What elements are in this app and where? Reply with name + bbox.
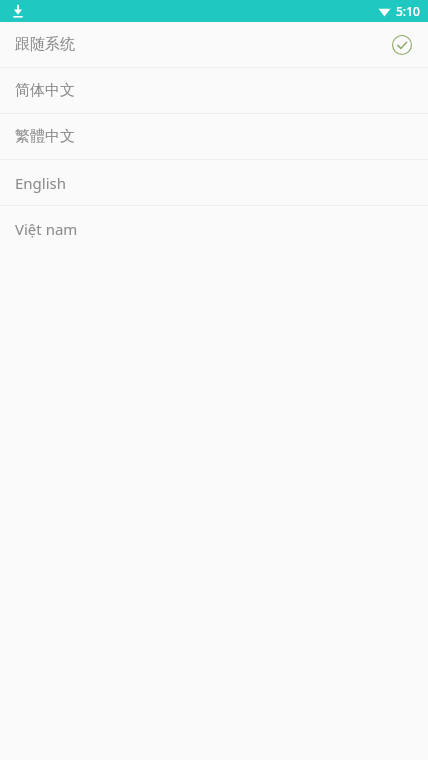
staticText: 5:10 — [396, 3, 420, 19]
staticText: 跟随系统 — [15, 35, 392, 54]
button[interactable]: 简体中文 — [0, 68, 428, 113]
staticText: Việt nam — [15, 219, 412, 239]
staticText: English — [15, 173, 412, 193]
other: Download in progress — [11, 4, 25, 18]
button[interactable]: Việt nam — [0, 206, 428, 251]
other: Selected — [392, 35, 412, 55]
staticText: 简体中文 — [15, 81, 412, 100]
button[interactable]: English — [0, 160, 428, 205]
staticText: 繁體中文 — [15, 127, 412, 146]
button[interactable]: 繁體中文 — [0, 114, 428, 159]
button[interactable]: 跟随系统 — [0, 22, 428, 67]
